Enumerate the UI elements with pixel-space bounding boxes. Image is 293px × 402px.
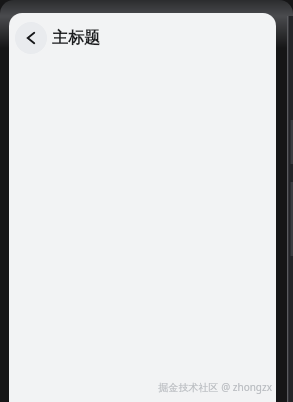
button[interactable]: Back: [15, 22, 47, 54]
staticText: 掘金技术社区 @ zhongzx: [158, 380, 272, 394]
staticText: 主标题: [52, 28, 100, 48]
